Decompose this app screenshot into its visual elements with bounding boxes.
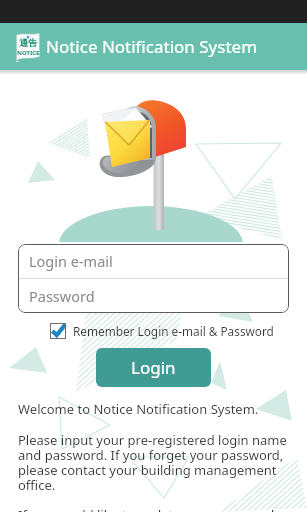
staticText: Password <box>29 286 95 306</box>
button[interactable]: Login <box>96 348 211 387</box>
button[interactable]: Remember Login e-mail & Password <box>50 323 274 339</box>
button[interactable]: Login e-mail <box>18 244 289 278</box>
staticText: Notice Notification System <box>46 35 258 58</box>
staticText: Please input your pre-registered login n… <box>18 431 289 494</box>
staticText: If you would like to update your passwor… <box>18 506 289 512</box>
staticText: Welcome to Notice Notification System. <box>18 400 259 418</box>
button[interactable]: Password <box>18 279 289 313</box>
other: Notice app icon <box>14 32 42 62</box>
staticText: Remember Login e-mail & Password <box>73 323 274 339</box>
staticText: 通告 <box>19 37 37 48</box>
staticText: NOTICE <box>17 49 40 57</box>
staticText: Login e-mail <box>29 251 113 271</box>
staticText: Login <box>131 356 176 379</box>
